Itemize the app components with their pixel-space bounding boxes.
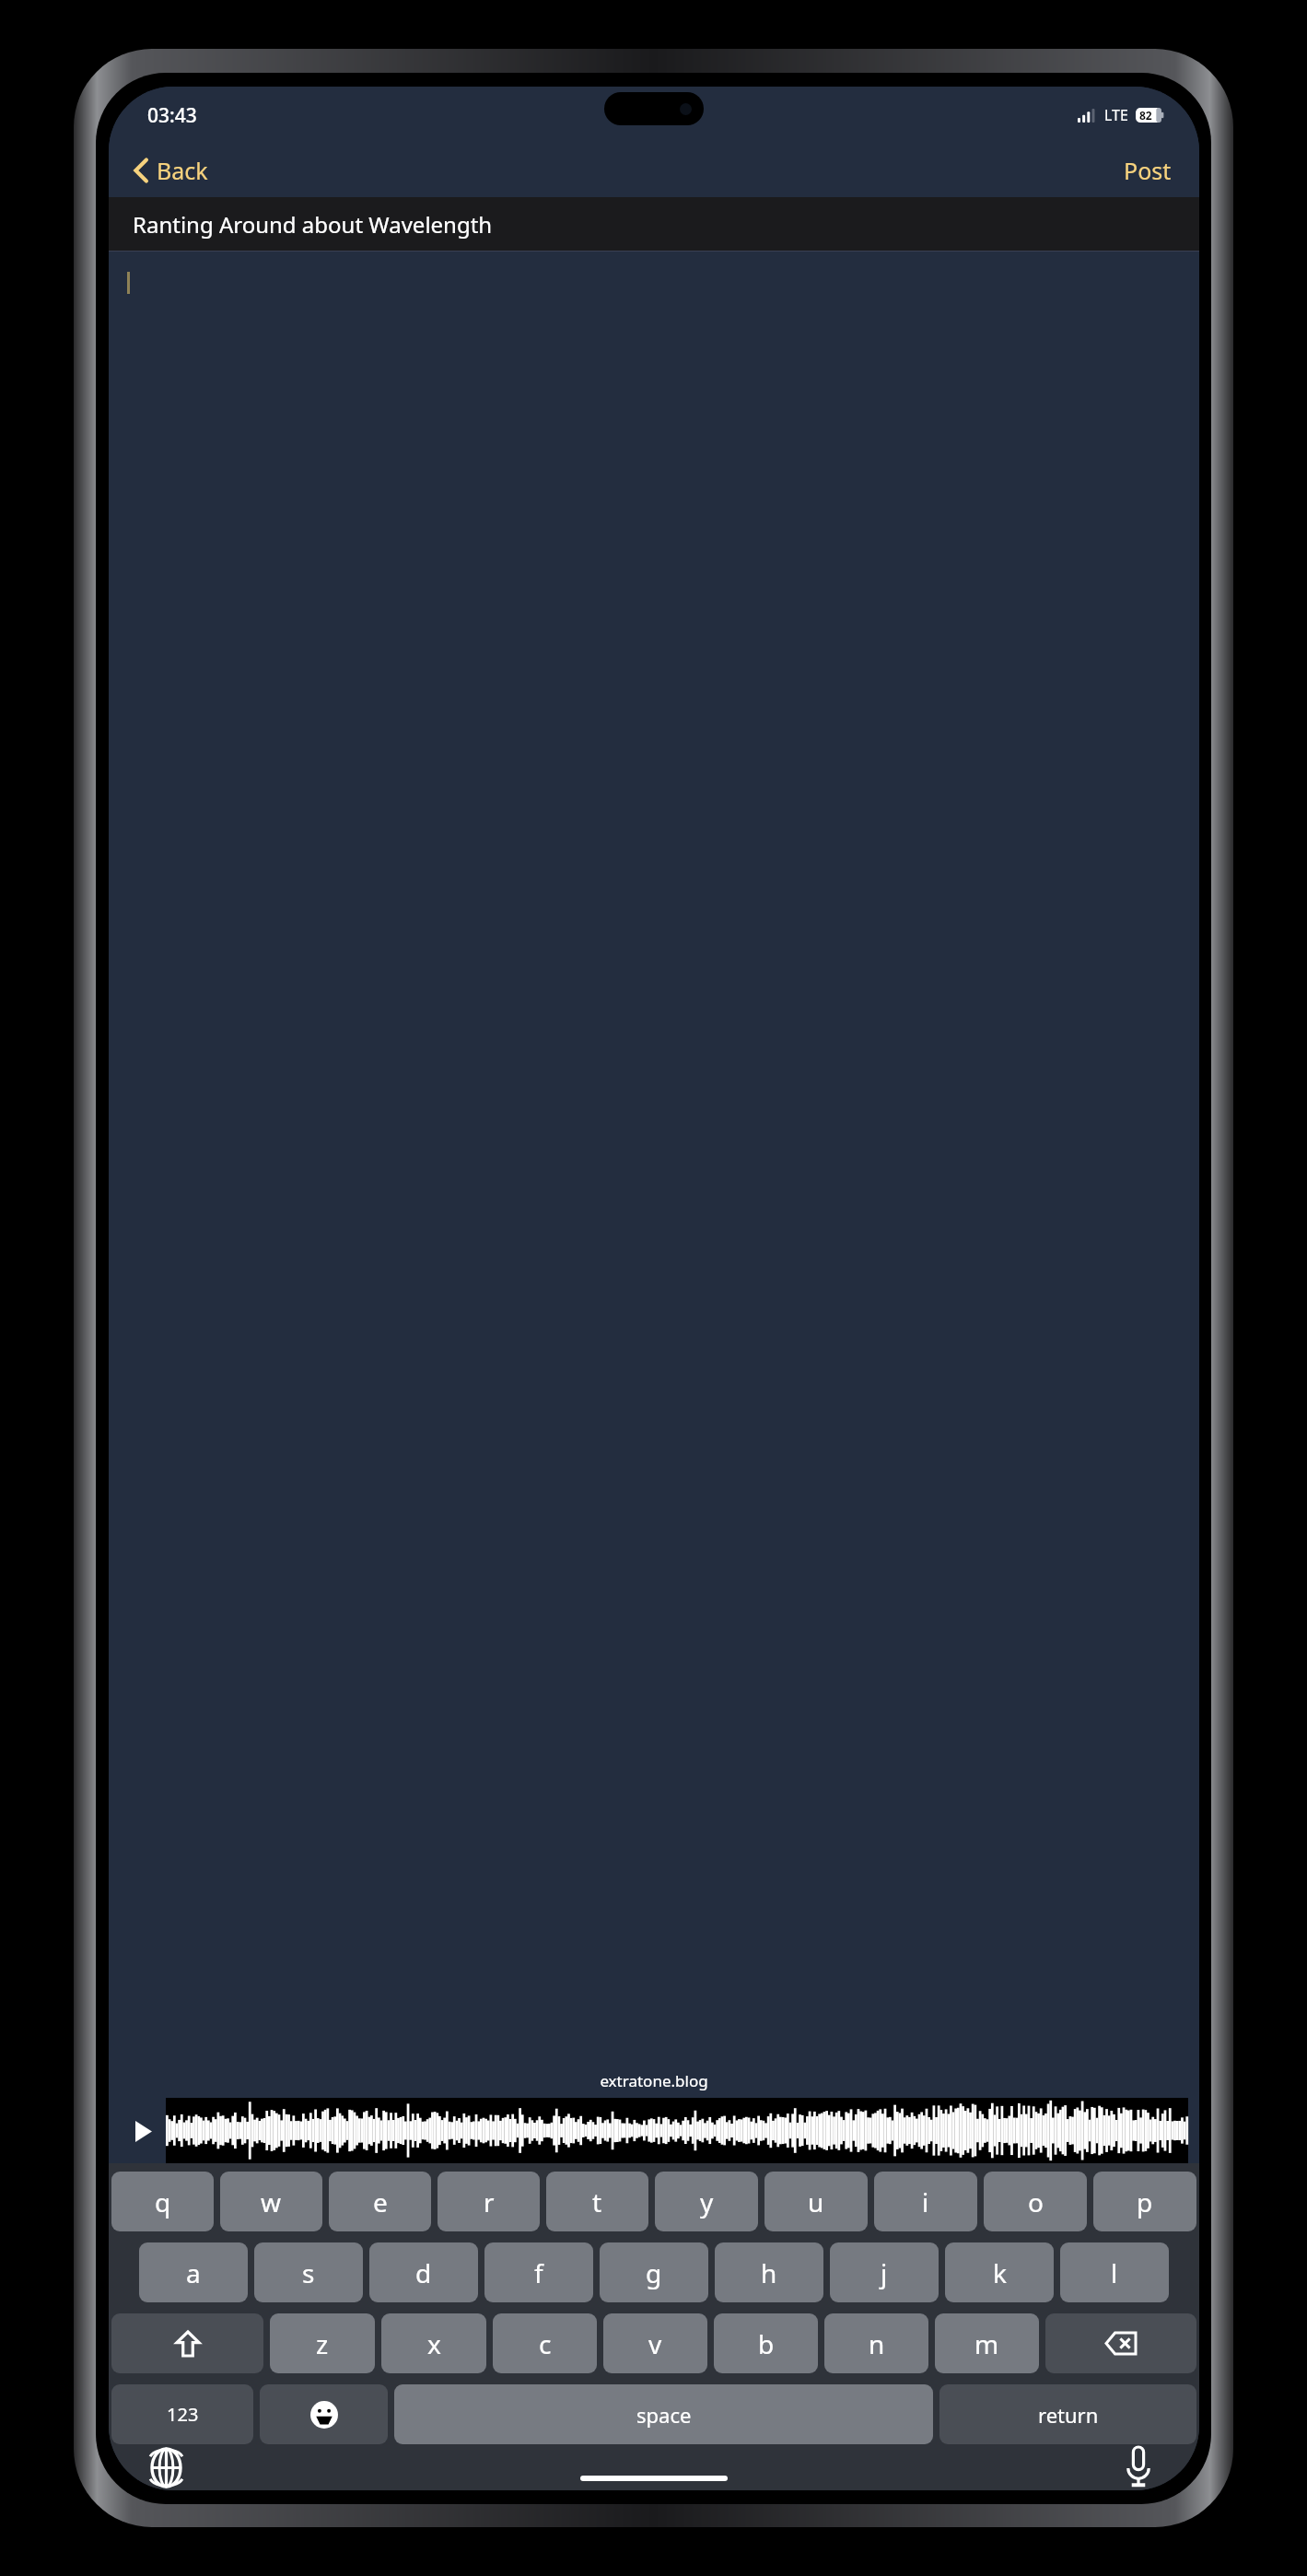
staticText: s [302,2255,315,2290]
button[interactable]: b [714,2313,818,2373]
button[interactable]: n [824,2313,928,2373]
button[interactable]: Audio waveform [166,2098,1188,2163]
staticText: y [700,2184,714,2219]
button[interactable]: Ranting Around about Wavelength [109,197,1199,251]
staticText: LTE [1104,105,1128,125]
staticText: n [869,2326,885,2361]
button[interactable]: s [254,2242,363,2302]
button[interactable]: h [715,2242,823,2302]
button[interactable]: i [874,2172,977,2231]
staticText: 123 [167,2402,199,2427]
button[interactable]: f [484,2242,593,2302]
staticText: i [922,2184,929,2219]
staticText: a [186,2255,201,2290]
staticText: Ranting Around about Wavelength [133,209,493,240]
button[interactable]: Change keyboard [142,2444,190,2490]
staticText: 82 [1139,108,1152,123]
staticText: t [592,2184,602,2219]
button[interactable]: v [603,2313,707,2373]
staticText: z [316,2326,329,2361]
button[interactable]: Shift [111,2313,263,2373]
button[interactable]: d [369,2242,478,2302]
staticText: f [534,2255,543,2290]
button[interactable]: Dictation [1114,2444,1162,2490]
button[interactable]: 123 [111,2384,253,2444]
button[interactable]: p [1093,2172,1196,2231]
staticText: v [648,2326,662,2361]
staticText: extratone.blog [109,2070,1199,2091]
button[interactable]: e [329,2172,431,2231]
staticText: h [761,2255,777,2290]
button[interactable]: Emoji [260,2384,388,2444]
button[interactable]: Backspace [1045,2313,1196,2373]
staticText: return [1038,2401,1099,2429]
button[interactable]: t [546,2172,648,2231]
staticText: g [646,2255,662,2290]
staticText: o [1028,2184,1044,2219]
staticText: x [427,2326,441,2361]
button[interactable]: w [220,2172,322,2231]
staticText: c [539,2326,552,2361]
button[interactable]: space [394,2384,933,2444]
button[interactable]: Play [125,2113,162,2149]
button[interactable]: Post [1118,151,1177,190]
staticText: p [1137,2184,1153,2219]
button[interactable]: c [493,2313,597,2373]
button[interactable]: g [600,2242,708,2302]
button[interactable]: l [1060,2242,1169,2302]
staticText: space [636,2401,692,2429]
button[interactable]: z [270,2313,375,2373]
staticText: m [974,2326,999,2361]
button[interactable]: return [939,2384,1196,2444]
button[interactable]: u [764,2172,868,2231]
button[interactable]: Back [129,151,214,190]
button[interactable]: m [935,2313,1039,2373]
button[interactable]: o [984,2172,1087,2231]
staticText: Back [157,155,208,186]
button[interactable]: k [945,2242,1054,2302]
button[interactable]: y [655,2172,758,2231]
button[interactable]: x [381,2313,486,2373]
staticText: e [373,2184,388,2219]
staticText: k [993,2255,1007,2290]
staticText: 03:43 [147,102,197,129]
staticText: q [155,2184,171,2219]
button[interactable]: r [438,2172,540,2231]
button[interactable]: q [111,2172,214,2231]
staticText: Post [1124,155,1172,186]
staticText: b [758,2326,775,2361]
staticText: u [808,2184,824,2219]
staticText: r [484,2184,495,2219]
staticText: d [415,2255,432,2290]
button[interactable]: j [830,2242,939,2302]
staticText: l [1111,2255,1118,2290]
button[interactable]: a [139,2242,248,2302]
staticText: w [261,2184,282,2219]
staticText: j [881,2255,888,2290]
